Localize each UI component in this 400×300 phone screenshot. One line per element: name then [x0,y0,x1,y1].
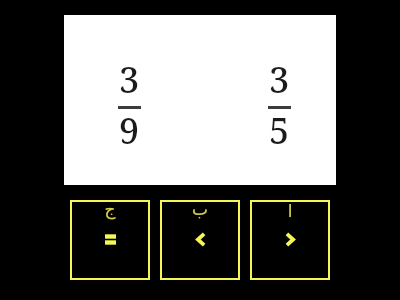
staticText: 5 [256,106,302,155]
staticText: ب [160,199,240,219]
button[interactable]: Greater than [250,200,330,280]
staticText: 3 [256,55,302,104]
staticText: ج [70,199,150,219]
staticText: 9 [106,106,152,155]
button[interactable]: Less than [160,200,240,280]
button[interactable]: Equal to [70,200,150,280]
staticText: ا [250,201,330,221]
staticText: 3 [106,55,152,104]
